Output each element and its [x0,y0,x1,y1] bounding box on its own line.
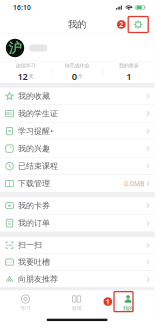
staticText: 1 [106,297,110,306]
button[interactable]: 连续学习 [0,62,51,83]
button[interactable]: 沪 [0,34,154,62]
button[interactable]: 我的卡券 [0,197,154,214]
staticText: 我要吐槽 [18,257,50,267]
button[interactable]: 待完成作业 [52,62,103,83]
button[interactable]: 我的收藏 [0,88,154,105]
staticText: 12 [18,70,28,83]
staticText: 我的兴趣 [18,144,50,153]
button[interactable]: 发现 [51,290,102,313]
staticText: 我的 [123,305,133,312]
button[interactable]: 学习 [0,290,51,313]
staticText: 沪 [8,40,21,56]
button[interactable]: 我要吐槽 [0,254,154,270]
button[interactable]: 下载管理 [0,175,154,192]
staticText: 个 [77,73,82,80]
button[interactable]: 我的学生证 [0,105,154,122]
staticText: 下载管理 [18,179,50,188]
button[interactable]: 学习提醒 [0,123,154,140]
button[interactable]: 我的奖状 [103,62,154,83]
button[interactable]: 我的兴趣 [0,140,154,157]
staticText: 2 [119,20,123,29]
staticText: 我的收藏 [18,91,50,101]
staticText: 1 [126,70,131,83]
staticText: 0 [72,70,77,83]
staticText: 我的奖状 [119,62,139,69]
button[interactable]: 我的订单 [0,215,154,232]
staticText: 向朋友推荐 [18,274,58,284]
button[interactable]: 已结束课程 [0,158,154,175]
staticText: 学习 [20,305,30,312]
button[interactable]: 扫一扫 [0,237,154,253]
staticText: 发现 [71,305,81,312]
staticText: 天 [28,73,33,80]
staticText: 待完成作业 [65,62,90,69]
staticText: 我的 [68,19,86,30]
staticText: 16:10 [13,3,31,12]
staticText: 已结束课程 [18,161,58,171]
staticText: 0.0MB [124,179,144,188]
staticText: 我的订单 [18,218,50,228]
staticText: 我的卡券 [18,201,50,210]
staticText: 连续学习 [15,62,35,69]
button[interactable]: 我的 [103,290,154,313]
staticText: 学习提醒 [18,126,50,136]
staticText: 我的学生证 [18,109,58,118]
staticText: 扫一扫 [18,240,42,250]
button[interactable]: 向朋友推荐 [0,271,154,287]
button[interactable]: Settings [128,16,148,32]
